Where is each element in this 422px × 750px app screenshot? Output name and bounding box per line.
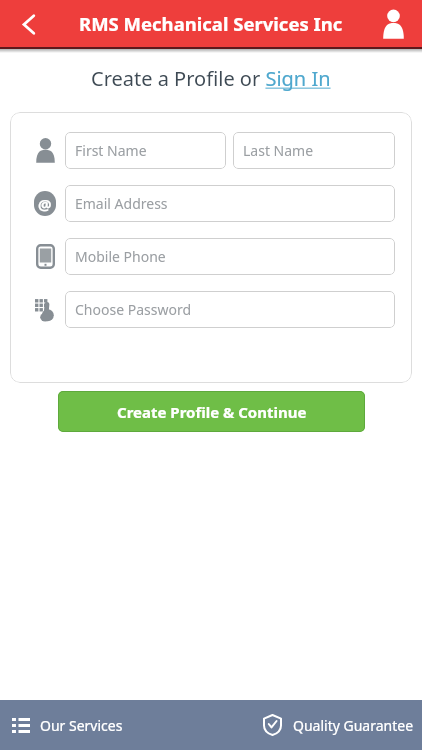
button[interactable]: Quality Guarantee (264, 715, 422, 735)
button[interactable]: Create Profile & Continue (58, 391, 365, 432)
staticText: RMS Mechanical Services Inc (79, 11, 343, 36)
staticText: Mobile Phone (75, 247, 166, 266)
button[interactable] (378, 9, 408, 39)
staticText: Email Address (75, 194, 168, 213)
button[interactable] (16, 11, 42, 37)
staticText: Our Services (40, 716, 123, 735)
staticText: First Name (75, 141, 147, 160)
staticText: Quality Guarantee (293, 716, 414, 735)
button[interactable]: Mobile Phone (65, 238, 395, 275)
button[interactable]: First Name (65, 132, 226, 169)
staticText: @ (38, 194, 52, 214)
button[interactable]: Our Services (0, 716, 123, 735)
staticText: Last Name (243, 141, 314, 160)
button[interactable]: Choose Password (65, 291, 395, 328)
button[interactable]: Create a Profile or Sign In (91, 65, 331, 92)
button[interactable]: Last Name (233, 132, 395, 169)
staticText: Create Profile & Continue (117, 402, 307, 422)
button[interactable]: Email Address (65, 185, 395, 222)
staticText: Choose Password (75, 300, 192, 319)
